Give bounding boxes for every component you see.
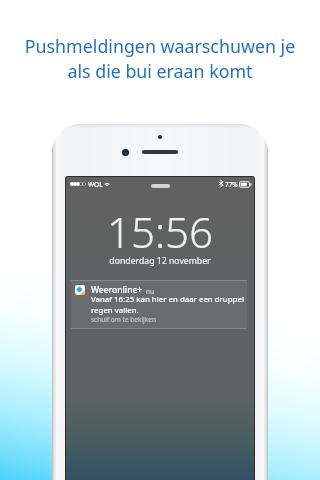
staticText: Weeronline+ [91,284,143,296]
staticText: Vanaf 16:25 kan hier en daar een druppel… [91,294,244,316]
staticText: Pushmeldingen waarschuwen je als die bui… [0,34,320,83]
staticText: 77% [225,180,238,189]
staticText: schuif om te bekijken [91,315,156,324]
staticText: donderdag 12 november [66,255,254,267]
staticText: WOL [88,180,103,189]
other: Weeronline app icon [75,285,85,295]
staticText: 15:56 [66,203,254,260]
button[interactable]: Weeronline app icon [71,280,247,329]
staticText: nu [146,287,155,296]
